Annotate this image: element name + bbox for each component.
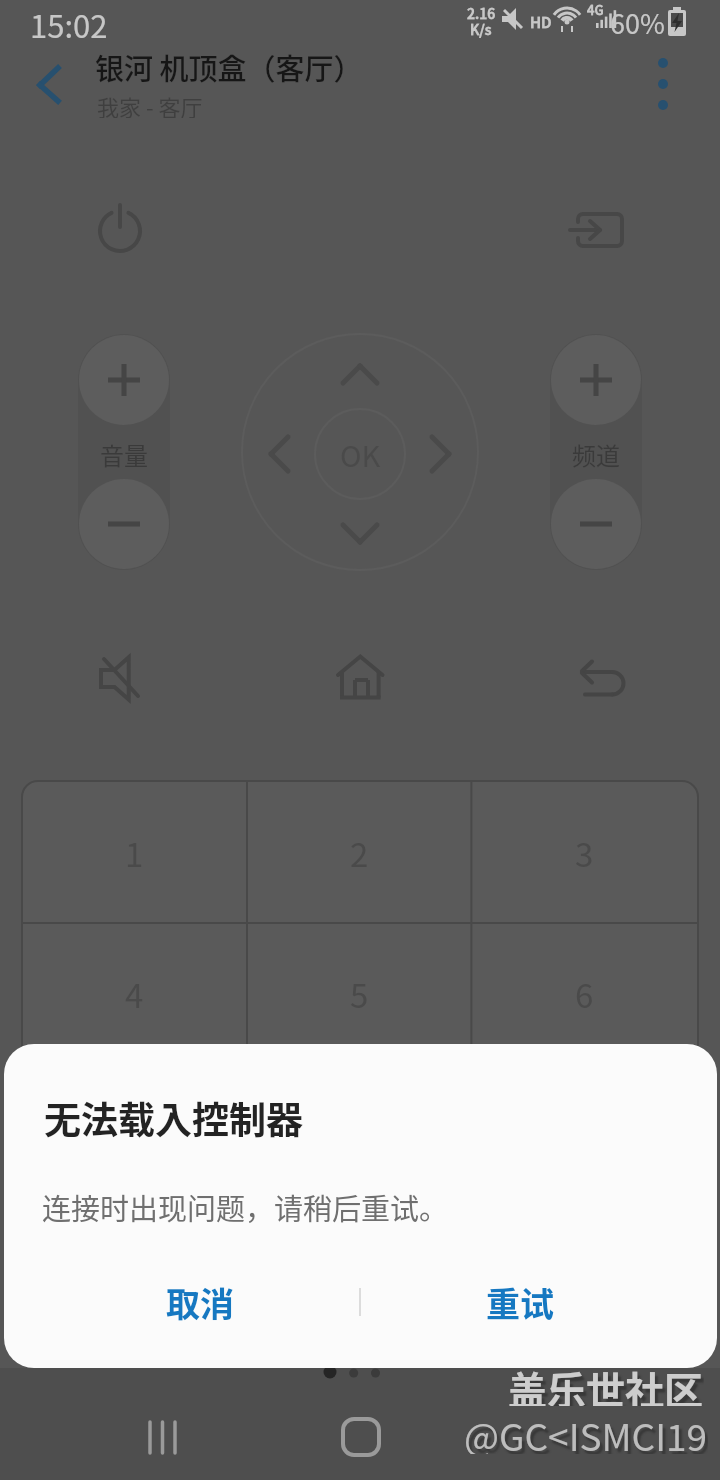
- staticText: 2.16: [467, 3, 496, 23]
- staticText: 4: [125, 970, 144, 1018]
- staticText: 重试: [486, 1278, 554, 1327]
- staticText: 取消: [166, 1278, 234, 1327]
- staticText: 音量: [100, 437, 148, 472]
- staticText: 15:02: [30, 2, 108, 42]
- staticText: HD: [530, 11, 552, 33]
- button[interactable]: 5: [247, 923, 471, 1064]
- button[interactable]: [79, 479, 169, 569]
- staticText: 盖乐世社区: [508, 1360, 704, 1406]
- staticText: 5: [350, 970, 369, 1018]
- button[interactable]: [551, 335, 641, 425]
- button[interactable]: [551, 479, 641, 569]
- staticText: 60%: [610, 3, 665, 42]
- button[interactable]: 6: [471, 923, 698, 1064]
- button[interactable]: 重试: [440, 1270, 600, 1334]
- staticText: 2: [350, 829, 369, 877]
- staticText: OK: [340, 433, 381, 475]
- staticText: 3: [575, 829, 594, 877]
- staticText: 连接时出现问题，请稍后重试。: [42, 1186, 449, 1228]
- button[interactable]: [573, 652, 627, 706]
- staticText: 频道: [572, 437, 620, 472]
- button[interactable]: [30, 60, 70, 108]
- button[interactable]: [640, 56, 686, 112]
- button[interactable]: [92, 652, 146, 706]
- staticText: 无法载入控制器: [44, 1091, 303, 1145]
- staticText: K/s: [470, 19, 492, 39]
- button[interactable]: [570, 206, 626, 254]
- staticText: 银河 机顶盒（客厅）: [95, 46, 363, 88]
- staticText: @GC<ISMCI19: [464, 1408, 708, 1454]
- button[interactable]: [94, 204, 146, 256]
- button[interactable]: 4: [22, 923, 247, 1064]
- button[interactable]: 取消: [120, 1270, 280, 1334]
- staticText: 1: [125, 829, 144, 877]
- button[interactable]: [333, 652, 387, 706]
- staticText: 我家 - 客厅: [97, 90, 203, 118]
- staticText: 6: [575, 970, 594, 1018]
- button[interactable]: [79, 335, 169, 425]
- staticText: 4G: [587, 0, 604, 18]
